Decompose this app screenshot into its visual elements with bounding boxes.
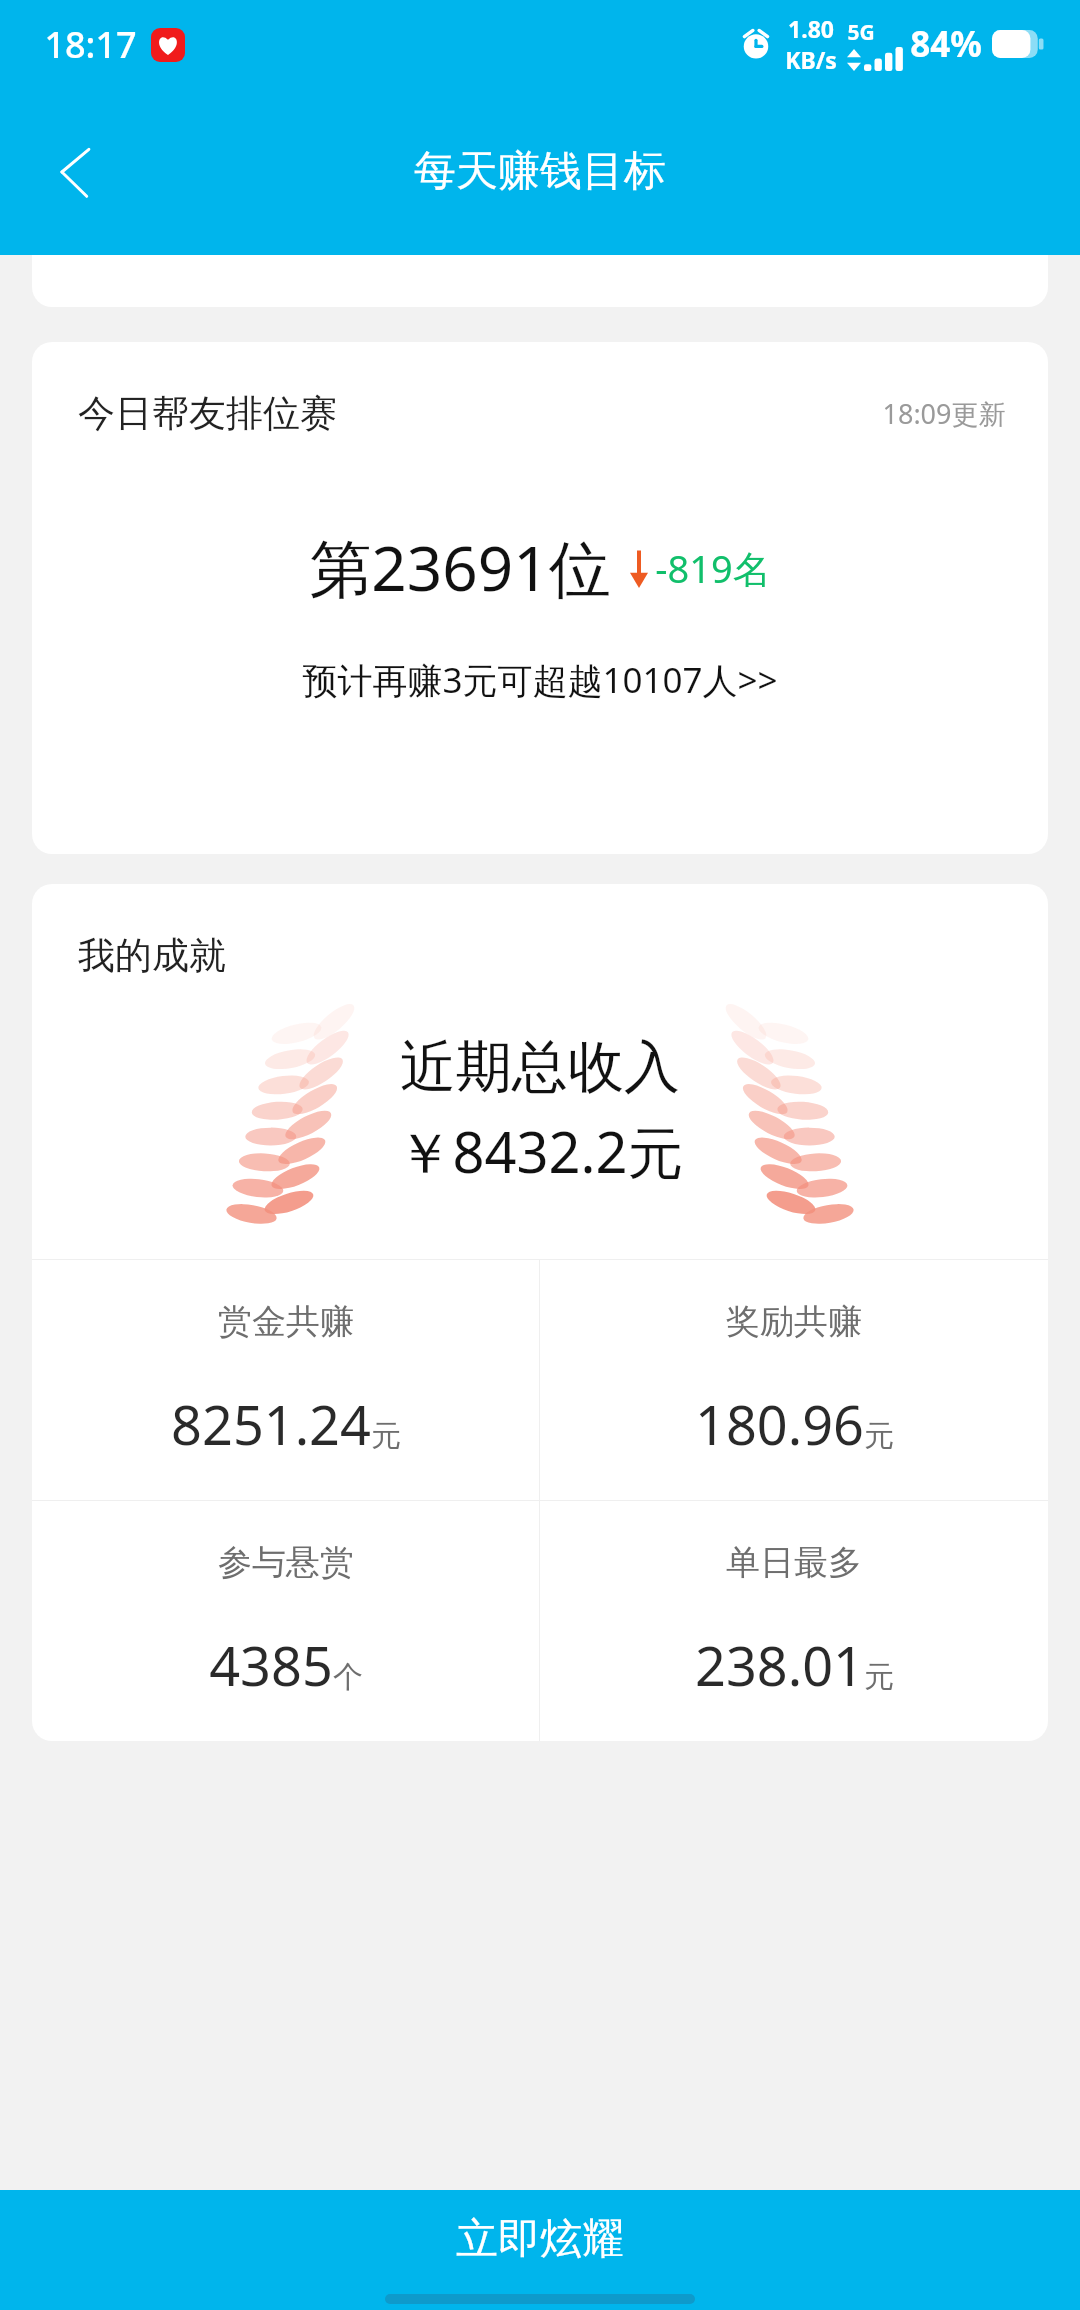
- staticText: 5G: [847, 18, 875, 47]
- staticText: 每天赚钱目标: [414, 145, 666, 198]
- button[interactable]: 奖励共赚: [540, 1260, 1048, 1500]
- staticText: 8251.24: [171, 1387, 371, 1461]
- staticText: 元: [371, 1417, 401, 1455]
- staticText: 238.01: [695, 1628, 864, 1702]
- staticText: 84%: [910, 20, 982, 68]
- staticText: ￥8432.2元: [396, 1113, 684, 1189]
- staticText: 个: [333, 1658, 363, 1696]
- button[interactable]: 今日帮友排位赛: [32, 342, 1048, 854]
- staticText: 1.80: [788, 13, 834, 44]
- button[interactable]: 单日最多: [540, 1501, 1048, 1741]
- staticText: 单日最多: [726, 1541, 862, 1584]
- staticText: 赏金共赚: [218, 1300, 354, 1343]
- staticText: 今日帮友排位赛: [78, 390, 337, 437]
- staticText: 预计再赚3元可超越10107人>>: [302, 656, 778, 704]
- staticText: 立即炫耀: [456, 2213, 624, 2266]
- staticText: 参与悬赏: [218, 1541, 354, 1584]
- staticText: KB/s: [785, 44, 837, 75]
- staticText: 4385: [209, 1628, 333, 1702]
- staticText: 元: [864, 1658, 894, 1696]
- button[interactable]: Back: [34, 129, 120, 215]
- button[interactable]: 赏金共赚: [32, 1260, 539, 1500]
- staticText: 18:17: [44, 20, 137, 69]
- staticText: 我的成就: [78, 932, 226, 979]
- staticText: 近期总收入: [400, 1032, 680, 1103]
- staticText: 奖励共赚: [726, 1300, 862, 1343]
- button[interactable]: 参与悬赏: [32, 1501, 539, 1741]
- staticText: 元: [864, 1417, 894, 1455]
- staticText: 第23691位: [309, 525, 611, 610]
- staticText: 18:09更新: [882, 395, 1006, 432]
- staticText: 180.96: [695, 1387, 864, 1461]
- staticText: -819名: [655, 542, 771, 594]
- button[interactable]: 立即炫耀: [0, 2190, 1080, 2310]
